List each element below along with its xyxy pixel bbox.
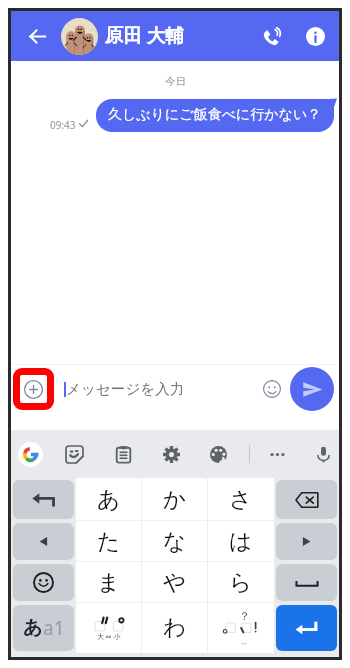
staticText: 久しぶりにご飯食べに行かない？ (108, 106, 322, 124)
button[interactable]: Emoji (13, 564, 74, 601)
staticText: a1 (43, 615, 65, 641)
staticText: ら (229, 568, 253, 596)
button[interactable]: Add attachment (13, 368, 54, 410)
staticText: ••• (241, 641, 247, 648)
button[interactable]: た (76, 521, 142, 562)
button[interactable]: 久しぶりにご飯食べに行かない？ (96, 99, 334, 132)
button[interactable]: ？ (208, 603, 274, 653)
button[interactable]: Themes (204, 440, 232, 468)
staticText: ま (97, 568, 121, 596)
button[interactable]: Move right (276, 523, 337, 560)
button[interactable]: Move left (13, 523, 74, 560)
button[interactable]: Info (299, 20, 331, 52)
button[interactable]: な (142, 521, 208, 562)
button[interactable]: Profile photo (61, 18, 98, 55)
staticText: あ (97, 485, 121, 513)
staticText: メッセージを入力 (66, 380, 185, 398)
button[interactable]: Space (276, 564, 337, 601)
button[interactable]: ら (208, 562, 274, 603)
button[interactable]: Delete (276, 480, 337, 519)
staticText: 09:43 (50, 118, 76, 132)
staticText: か (163, 485, 187, 513)
button[interactable]: Back (23, 22, 51, 50)
button[interactable]: わ (142, 603, 208, 653)
button[interactable]: か (142, 478, 208, 521)
button[interactable]: Stickers (60, 440, 88, 468)
staticText: 大 ⇔ 小 (97, 632, 121, 642)
staticText: あ (23, 616, 43, 640)
button[interactable]: は (208, 521, 274, 562)
button[interactable]: Switch input mode (13, 605, 74, 651)
button[interactable]: Emoji (257, 374, 287, 404)
button[interactable]: Send (290, 367, 334, 411)
button[interactable]: ま (76, 562, 142, 603)
staticText: 原田 大輔 (105, 22, 184, 47)
staticText: ？ (239, 609, 250, 623)
staticText: わ (163, 613, 187, 641)
staticText: な (163, 527, 187, 555)
staticText: た (97, 527, 121, 555)
button[interactable]: 大 ⇔ 小 (76, 603, 142, 653)
button[interactable]: あ (76, 478, 142, 521)
button[interactable]: Voice input (309, 440, 337, 468)
button[interactable]: Call (255, 20, 287, 52)
button[interactable]: Undo (13, 480, 74, 519)
button[interactable]: さ (208, 478, 274, 521)
staticText: さ (229, 485, 253, 513)
button[interactable]: や (142, 562, 208, 603)
staticText: や (163, 568, 187, 596)
staticText: は (229, 527, 253, 555)
button[interactable]: Enter (276, 605, 337, 651)
button[interactable]: Settings (157, 440, 185, 468)
button[interactable]: Clipboard (109, 440, 137, 468)
staticText: 今日 (165, 75, 186, 88)
button[interactable]: Google (18, 442, 43, 467)
button[interactable]: More (263, 440, 291, 468)
